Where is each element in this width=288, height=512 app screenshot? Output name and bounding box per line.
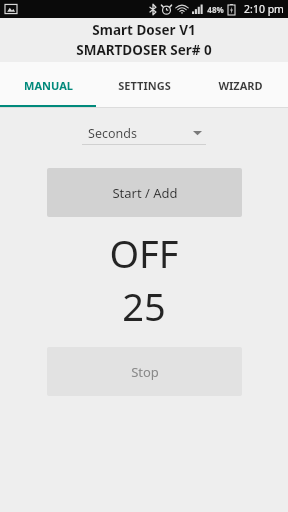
staticText: MANUAL: [24, 78, 73, 93]
button[interactable]: Stop: [47, 347, 242, 396]
staticText: Stop: [131, 363, 159, 381]
staticText: SETTINGS: [118, 78, 171, 93]
staticText: 25: [122, 280, 166, 332]
staticText: SMARTDOSER Ser# 0: [76, 41, 212, 59]
staticText: Seconds: [88, 125, 137, 142]
staticText: 2:10 pm: [244, 2, 284, 16]
staticText: Smart Doser V1: [92, 21, 196, 39]
button[interactable]: MANUAL: [0, 62, 96, 108]
staticText: WIZARD: [218, 78, 263, 93]
button[interactable]: Start / Add: [47, 168, 242, 217]
staticText: Start / Add: [112, 184, 178, 202]
button[interactable]: SETTINGS: [96, 62, 192, 108]
staticText: 48%: [207, 4, 224, 15]
other: Open unit dropdown: [193, 130, 202, 136]
button[interactable]: WIZARD: [192, 62, 288, 108]
button[interactable]: Seconds: [82, 122, 206, 145]
staticText: OFF: [109, 227, 179, 279]
